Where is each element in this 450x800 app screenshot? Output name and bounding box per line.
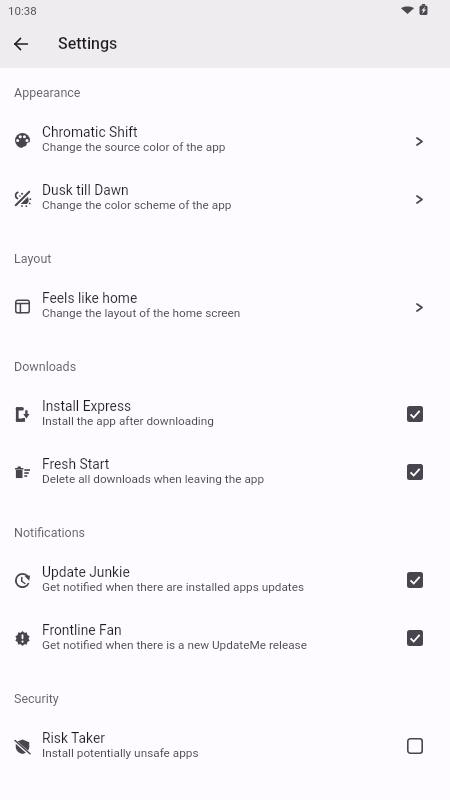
staticText: 10:38: [8, 4, 37, 17]
staticText: Settings: [58, 34, 118, 53]
button[interactable]: Chromatic Shift: [0, 114, 450, 172]
button[interactable]: Frontline Fan: [0, 612, 450, 670]
staticText: Fresh Start: [42, 456, 110, 472]
staticText: Get notified when there is a new UpdateM…: [42, 638, 307, 652]
staticText: Appearance: [14, 85, 81, 100]
staticText: Change the color scheme of the app: [42, 198, 232, 212]
staticText: Install Express: [42, 398, 132, 414]
staticText: Notifications: [14, 525, 86, 540]
button[interactable]: Fresh Start: [0, 446, 450, 504]
staticText: Delete all downloads when leaving the ap…: [42, 472, 265, 486]
button[interactable]: Install Express: [0, 388, 450, 446]
button[interactable]: Back: [5, 28, 37, 60]
button[interactable]: Dusk till Dawn: [0, 172, 450, 230]
staticText: Frontline Fan: [42, 622, 122, 638]
staticText: Layout: [14, 251, 52, 266]
staticText: Change the layout of the home screen: [42, 306, 241, 320]
button[interactable]: Feels like home: [0, 280, 450, 338]
staticText: Install the app after downloading: [42, 414, 214, 428]
staticText: Get notified when there are installed ap…: [42, 580, 305, 594]
staticText: Update Junkie: [42, 564, 130, 580]
staticText: Install potentially unsafe apps: [42, 746, 199, 760]
staticText: Dusk till Dawn: [42, 182, 129, 198]
staticText: Feels like home: [42, 290, 138, 306]
staticText: Chromatic Shift: [42, 124, 138, 140]
button[interactable]: Risk Taker: [0, 720, 450, 778]
button[interactable]: Update Junkie: [0, 554, 450, 612]
staticText: Risk Taker: [42, 730, 105, 746]
staticText: Change the source color of the app: [42, 140, 226, 154]
staticText: Security: [14, 691, 59, 706]
staticText: Downloads: [14, 359, 77, 374]
